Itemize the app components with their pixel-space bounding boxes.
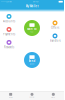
staticText: Pay	[30, 31, 33, 33]
staticText: Send	[28, 59, 35, 63]
staticText: Transfers	[49, 39, 60, 42]
staticText: Scan to	[27, 27, 37, 31]
staticText: Offers	[51, 26, 59, 29]
button[interactable]: Rewards	[0, 40, 17, 49]
button[interactable]: More	[43, 92, 64, 99]
staticText: Accounts	[3, 19, 15, 23]
staticText: Payments	[3, 32, 15, 36]
button[interactable]: Send	[24, 52, 40, 68]
staticText: Home	[9, 96, 13, 98]
staticText: Cards	[29, 96, 34, 98]
button[interactable]: Scan to	[24, 20, 40, 36]
staticText: ••••• Carrier	[1, 1, 12, 3]
button[interactable]: Accounts	[0, 14, 17, 23]
button[interactable]: Payments	[0, 27, 17, 36]
button[interactable]: Transfers	[46, 34, 63, 42]
button[interactable]: Cards	[21, 92, 43, 99]
button[interactable]: Home	[0, 92, 21, 99]
staticText: Money	[29, 63, 34, 65]
staticText: Rewards	[4, 45, 14, 49]
staticText: 9:41 AM	[33, 1, 38, 3]
staticText: My Wallet	[25, 4, 38, 8]
button[interactable]: Offers	[46, 21, 63, 29]
staticText: More	[51, 96, 55, 98]
